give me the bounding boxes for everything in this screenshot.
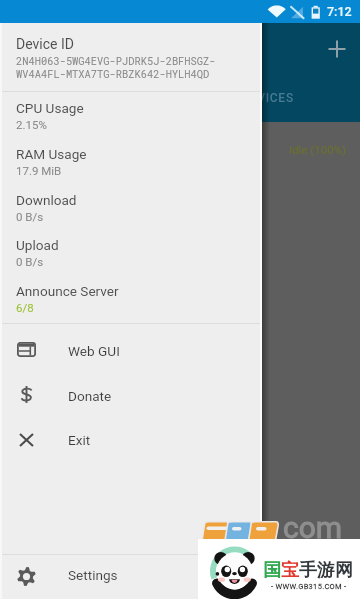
staticText: Exit [68, 432, 91, 448]
staticText: Web GUI [68, 343, 120, 359]
staticText: com [283, 510, 343, 545]
staticText: 7:12 [327, 4, 352, 19]
staticText: 0 B/s [16, 210, 44, 223]
button[interactable]: Download [0, 192, 262, 238]
button[interactable]: Settings [0, 553, 262, 597]
staticText: Upload [16, 237, 59, 253]
staticText: DEVICES [241, 91, 294, 105]
staticText: Announce Server [16, 283, 119, 299]
staticText: 2N4H063-5WG4EVG-PJDRK5J-2BFHSGZ- WV4A4FL… [16, 54, 216, 81]
staticText: 宝 [281, 559, 299, 582]
staticText: 2.15% [16, 118, 47, 131]
button[interactable]: CPU Usage [0, 100, 262, 146]
button[interactable]: Donate [0, 374, 262, 418]
staticText: Donate [68, 388, 112, 404]
button[interactable]: Exit [0, 418, 262, 462]
button[interactable]: Add device [325, 37, 349, 61]
button[interactable]: RAM Usage [0, 146, 262, 192]
staticText: 手游网 [299, 559, 353, 582]
staticText: 17.9 MiB [16, 164, 62, 177]
staticText: Settings [68, 567, 118, 583]
staticText: RAM Usage [16, 146, 87, 162]
staticText: - WWW.GB315.COM - [271, 582, 347, 591]
staticText: Download [16, 192, 77, 208]
staticText: 国 [263, 559, 281, 582]
button[interactable]: Web GUI [0, 329, 262, 373]
staticText: 6/8 [16, 301, 34, 314]
staticText: Device ID [16, 36, 74, 52]
button[interactable]: Announce Server [0, 283, 262, 329]
button[interactable]: Upload [0, 237, 262, 283]
staticText: 0 B/s [16, 255, 44, 268]
staticText: Idle (100%) [289, 143, 347, 156]
staticText: CPU Usage [16, 100, 84, 116]
